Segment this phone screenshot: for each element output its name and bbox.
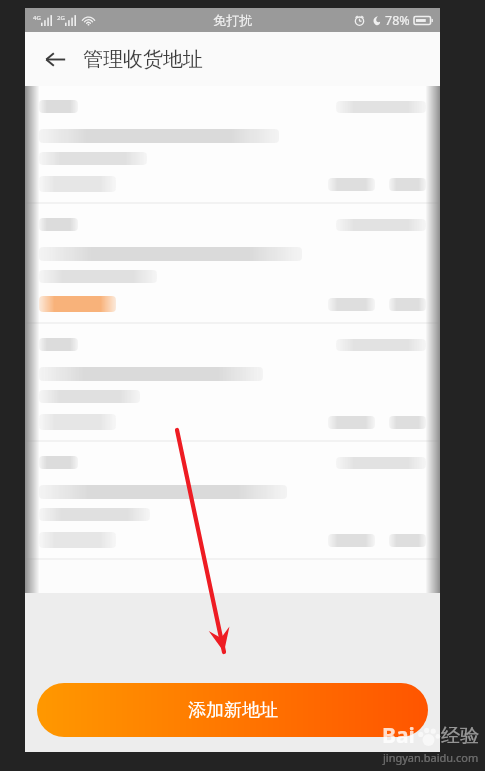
button[interactable]: Back — [35, 39, 75, 79]
staticText: 添加新地址 — [188, 699, 278, 722]
staticText: Bai — [382, 721, 415, 750]
staticText: 免打扰 — [213, 12, 252, 28]
staticText: 4G — [33, 14, 41, 22]
button[interactable] — [25, 442, 440, 560]
button[interactable]: 添加新地址 — [37, 683, 428, 737]
staticText: 2G — [57, 14, 65, 22]
staticText: 管理收货地址 — [83, 47, 203, 72]
button[interactable] — [25, 324, 440, 442]
staticText: 经验 — [441, 724, 479, 748]
staticText: 78% — [385, 12, 410, 29]
staticText: jingyan.baidu.com — [383, 750, 479, 765]
button[interactable] — [25, 86, 440, 204]
button[interactable] — [25, 204, 440, 324]
